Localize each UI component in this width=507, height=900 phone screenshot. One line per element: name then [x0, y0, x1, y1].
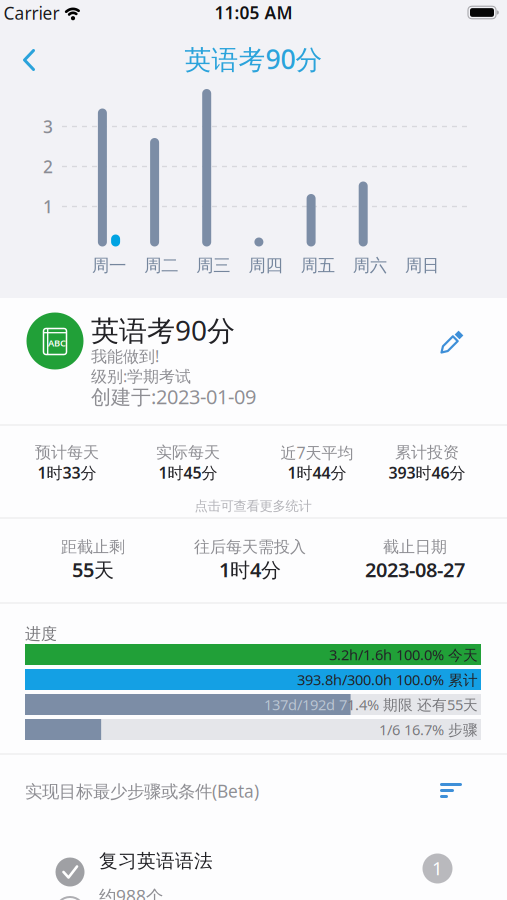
button[interactable]: 复习英语语法 [0, 0, 507, 900]
staticText: 3 [43, 115, 53, 138]
staticText: 周日 [405, 255, 439, 276]
staticText: 周六 [353, 255, 387, 276]
staticText: 1时4分 [219, 556, 281, 583]
staticText: 393.8h/300.0h 100.0% 累计 [297, 670, 478, 689]
staticText: 预计每天 [35, 443, 99, 462]
staticText: 2023-08-27 [365, 556, 465, 583]
staticText: 周一 [92, 255, 126, 276]
button[interactable] [429, 319, 475, 365]
staticText: 1 [432, 856, 443, 880]
staticText: 1 [43, 195, 53, 218]
staticText: 2 [43, 155, 53, 178]
staticText: 近7天平均 [280, 442, 353, 463]
staticText: 实际每天 [156, 443, 220, 462]
staticText: ABC [48, 337, 66, 349]
staticText: Carrier [3, 1, 59, 24]
staticText: 累计投资 [395, 443, 459, 462]
staticText: 创建于:2023-01-09 [91, 383, 256, 410]
staticText: 1/6 16.7% 步骤 [379, 720, 478, 739]
button[interactable] [432, 775, 472, 807]
staticText: 周二 [144, 255, 178, 276]
staticText: 周四 [248, 255, 282, 276]
staticText: 往后每天需投入 [194, 537, 306, 557]
staticText: 进度 [25, 624, 57, 644]
staticText: 137d/192d 7 [264, 695, 347, 714]
staticText: 复习英语语法 [99, 849, 213, 872]
staticText: 级别:学期考试 [91, 365, 191, 387]
staticText: 3.2h/1.6h 100.0% 今天 [329, 645, 478, 664]
staticText: 11:05 AM [214, 1, 292, 24]
staticText: 周五 [301, 255, 335, 276]
staticText: 393时46分 [388, 462, 465, 483]
staticText: 1.4% 期限 还有55天 [347, 695, 478, 714]
staticText: 1时33分 [37, 462, 96, 483]
staticText: 距截止剩 [61, 537, 125, 557]
staticText: 约988个 [99, 884, 163, 900]
staticText: 1时45分 [158, 462, 217, 483]
button[interactable]: 点击可查看更多统计 [190, 494, 315, 518]
staticText: 英语考90分 [91, 311, 235, 349]
staticText: 55天 [72, 556, 114, 583]
staticText: 英语考90分 [184, 41, 322, 77]
staticText: 周三 [196, 255, 230, 276]
staticText: 点击可查看更多统计 [194, 498, 311, 514]
staticText: 1时44分 [287, 462, 346, 483]
staticText: 截止日期 [383, 537, 447, 557]
staticText: 我能做到! [91, 345, 159, 367]
staticText: 实现目标最少步骤或条件(Beta) [25, 779, 259, 802]
button[interactable] [12, 39, 46, 81]
